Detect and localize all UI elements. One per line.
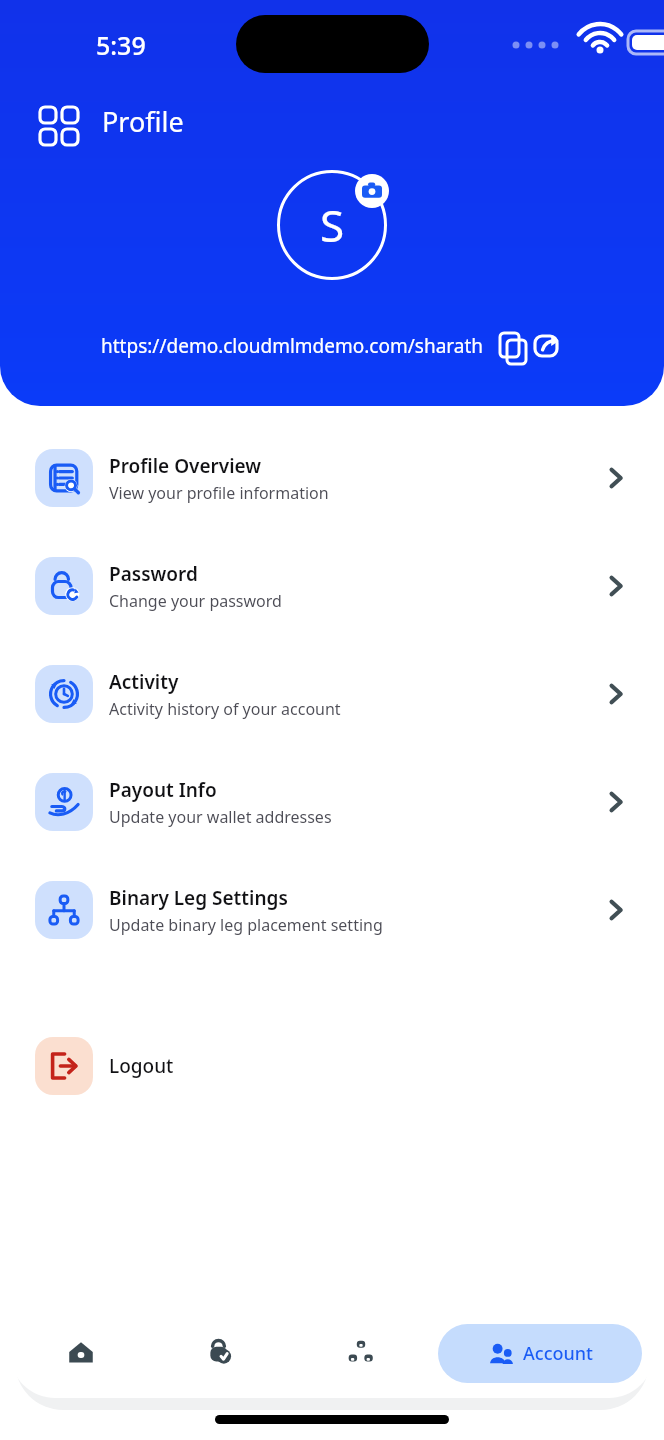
staticText: Password (109, 561, 198, 587)
staticText: Update binary leg placement setting (109, 914, 383, 936)
button[interactable]: Account (438, 1324, 642, 1383)
button[interactable]: Home (10, 1308, 151, 1398)
button[interactable]: Activity (0, 640, 664, 748)
button[interactable]: Change photo (355, 174, 389, 208)
button[interactable]: Copy link (496, 331, 526, 361)
staticText: Profile Overview (109, 453, 262, 479)
button[interactable]: Shop (151, 1308, 291, 1398)
staticText: Profile (102, 103, 184, 140)
button[interactable]: Logout (0, 1018, 664, 1114)
staticText: S (320, 195, 345, 255)
staticText: Logout (109, 1053, 174, 1079)
staticText: Change your password (109, 590, 282, 612)
button[interactable]: Network (291, 1308, 431, 1398)
button[interactable]: Menu (36, 101, 76, 141)
staticText: Update your wallet addresses (109, 806, 332, 828)
staticText: Payout Info (109, 777, 217, 803)
staticText: Activity history of your account (109, 698, 341, 720)
button[interactable]: Password (0, 532, 664, 640)
button[interactable]: Share link (532, 330, 564, 362)
staticText: Account (523, 1341, 593, 1366)
staticText: 5:39 (96, 28, 146, 62)
button[interactable]: Profile Overview (0, 424, 664, 532)
staticText: View your profile information (109, 482, 329, 504)
button[interactable]: Payout Info (0, 748, 664, 856)
staticText: https://demo.cloudmlmdemo.com/sharath (101, 333, 484, 359)
staticText: Binary Leg Settings (109, 885, 288, 911)
button[interactable]: Binary Leg Settings (0, 856, 664, 964)
staticText: Activity (109, 669, 179, 695)
